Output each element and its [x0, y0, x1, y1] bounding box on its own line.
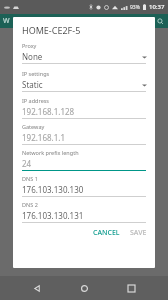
staticText: DNS 2	[22, 201, 38, 208]
button[interactable]: 176.103.130.131	[13, 208, 155, 223]
button[interactable]: 192.168.1.1	[13, 130, 155, 145]
button[interactable]: SAVE	[125, 225, 152, 241]
staticText: 176.103.130.131	[22, 210, 84, 221]
staticText: 93%	[130, 4, 140, 11]
staticText: CANCEL	[93, 228, 120, 238]
button[interactable]: Search	[157, 18, 164, 25]
button[interactable]: CANCEL	[88, 225, 125, 241]
staticText: 10:37	[149, 3, 165, 11]
staticText: Proxy	[22, 42, 37, 49]
staticText: Gateway	[22, 123, 45, 130]
staticText: None	[22, 51, 43, 62]
staticText: IP settings	[22, 70, 50, 77]
staticText: IP address	[22, 97, 50, 104]
button[interactable]: 24	[13, 156, 155, 171]
staticText: Network prefix length	[22, 149, 79, 156]
staticText: HOME-CE2F-5	[22, 24, 81, 36]
button[interactable]: Home	[74, 278, 94, 298]
staticText: Static	[22, 79, 43, 90]
staticText: W	[3, 16, 10, 26]
button[interactable]: Static	[13, 77, 155, 92]
button[interactable]: 192.168.1.128	[13, 104, 155, 119]
button[interactable]: None	[13, 49, 155, 64]
button[interactable]: Back	[27, 278, 47, 298]
staticText: 192.168.1.128	[22, 106, 75, 117]
staticText: SAVE	[130, 228, 147, 238]
staticText: 192.168.1.1	[22, 132, 66, 143]
staticText: 24	[22, 158, 32, 169]
button[interactable]: 176.103.130.130	[13, 182, 155, 197]
staticText: DNS 1	[22, 175, 38, 182]
staticText: 176.103.130.130	[22, 184, 84, 195]
button[interactable]: Recent apps	[121, 278, 141, 298]
